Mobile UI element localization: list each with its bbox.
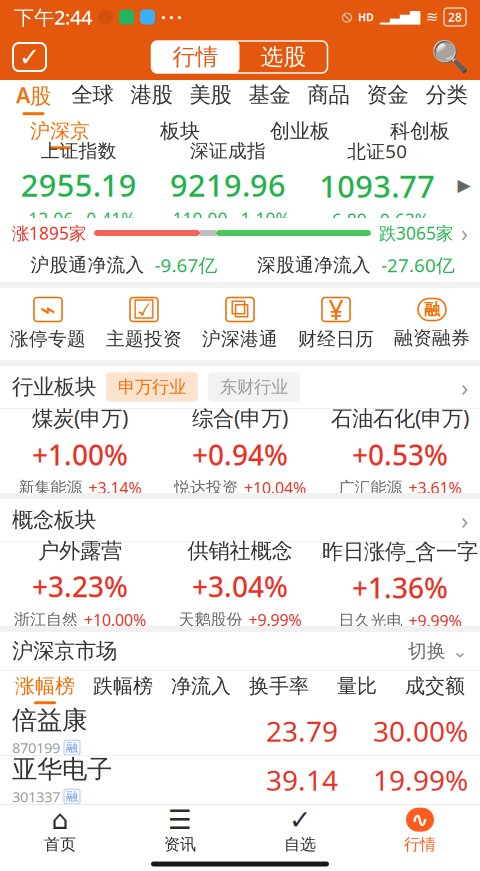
staticText: 美股 bbox=[189, 82, 231, 108]
button[interactable]: ⌁ bbox=[0, 297, 96, 350]
button[interactable]: 融 bbox=[384, 298, 480, 349]
button[interactable]: 涨幅榜 bbox=[6, 671, 84, 707]
button[interactable]: ✓ bbox=[240, 808, 360, 854]
staticText: 资讯 bbox=[164, 835, 196, 854]
staticText: 上证指数 bbox=[41, 140, 117, 163]
button[interactable]: ⌂ bbox=[0, 808, 120, 854]
button[interactable]: 成交额 bbox=[396, 671, 474, 707]
staticText: 亚华电子 bbox=[12, 754, 112, 785]
staticText: ✓ bbox=[19, 43, 40, 71]
staticText: 昨日涨停_含一字 bbox=[322, 537, 478, 565]
staticText: 沪股通净流入 bbox=[30, 253, 144, 276]
staticText: 行情 bbox=[404, 835, 436, 854]
button[interactable]: 基金 bbox=[240, 80, 299, 116]
button[interactable]: 切换 bbox=[408, 639, 468, 662]
staticText: ✓ bbox=[289, 804, 311, 835]
staticText: -0.63% bbox=[374, 208, 429, 231]
staticText: 39.14 bbox=[266, 761, 338, 799]
staticText: 23.79 bbox=[266, 712, 338, 750]
staticText: 沪深京 bbox=[30, 119, 90, 143]
button[interactable]: A股 bbox=[4, 80, 63, 116]
staticText: 301337 bbox=[12, 787, 60, 806]
staticText: 深股通净流入 bbox=[257, 253, 371, 276]
button[interactable]: ⧉ bbox=[192, 297, 288, 350]
button[interactable]: 净流入 bbox=[162, 671, 240, 707]
button[interactable]: 商品 bbox=[299, 80, 358, 116]
staticText: -1.19% bbox=[234, 207, 289, 230]
staticText: 🔍 bbox=[431, 39, 469, 74]
staticText: ¥ bbox=[328, 292, 343, 327]
button[interactable]: 换手率 bbox=[240, 671, 318, 707]
button[interactable]: 沪深京 bbox=[0, 116, 120, 152]
staticText: ⌄ bbox=[452, 640, 468, 662]
button[interactable]: 东财行业 bbox=[208, 372, 300, 402]
staticText: 换手率 bbox=[249, 674, 309, 698]
staticText: 行业板块 bbox=[12, 374, 96, 400]
button[interactable]: 昨日涨停_含一字 bbox=[320, 537, 480, 631]
staticText: +9.99% bbox=[408, 610, 461, 631]
staticText: 创业板 bbox=[270, 119, 330, 143]
button[interactable]: ☰ bbox=[120, 808, 240, 854]
button[interactable]: 资金 bbox=[358, 80, 417, 116]
staticText: 东财行业 bbox=[220, 376, 288, 398]
button[interactable]: 煤炭(申万) bbox=[0, 404, 160, 498]
staticText: 融 bbox=[66, 789, 78, 804]
button[interactable]: ☑ bbox=[96, 297, 192, 350]
button[interactable]: 深股通净流入 bbox=[240, 253, 472, 277]
staticText: 融 bbox=[424, 300, 440, 319]
button[interactable]: 板块 bbox=[120, 116, 240, 152]
staticText: 港股 bbox=[130, 82, 172, 108]
button[interactable]: 倍益康 bbox=[0, 707, 480, 755]
button[interactable]: 上证指数 bbox=[4, 140, 153, 230]
staticText: 基金 bbox=[248, 82, 290, 108]
staticText: +10.00% bbox=[84, 609, 146, 630]
button[interactable]: 行情 bbox=[151, 41, 239, 73]
button[interactable]: 申万行业 bbox=[106, 372, 198, 402]
staticText: 概念板块 bbox=[12, 507, 96, 533]
staticText: • • • bbox=[161, 8, 182, 26]
staticText: +0.53% bbox=[352, 436, 448, 473]
button[interactable]: 深证成指 bbox=[153, 140, 303, 230]
staticText: 广汇能源 bbox=[338, 478, 402, 498]
button[interactable]: 供销社概念 bbox=[160, 538, 320, 630]
staticText: 户外露营 bbox=[38, 538, 122, 564]
staticText: +0.94% bbox=[192, 436, 288, 473]
button[interactable]: 分类 bbox=[417, 80, 476, 116]
button[interactable]: 自选 bbox=[13, 43, 46, 71]
button[interactable]: 搜索 bbox=[433, 40, 467, 74]
button[interactable]: 跌幅榜 bbox=[84, 671, 162, 707]
staticText: 综合(申万) bbox=[192, 404, 288, 432]
button[interactable]: 石油石化(申万) bbox=[320, 404, 480, 498]
staticText: ⌁ bbox=[40, 294, 56, 325]
button[interactable]: 创业板 bbox=[240, 116, 360, 152]
staticText: 分类 bbox=[425, 82, 467, 108]
button[interactable]: 科创板 bbox=[360, 116, 480, 152]
staticText: ≋ bbox=[426, 9, 438, 25]
staticText: +1.36% bbox=[352, 569, 448, 606]
button[interactable]: ¥ bbox=[288, 297, 384, 350]
staticText: -27.60亿 bbox=[381, 253, 455, 277]
staticText: ☰ bbox=[168, 804, 192, 835]
staticText: 涨幅榜 bbox=[15, 674, 75, 698]
button[interactable]: 沪股通净流入 bbox=[8, 253, 240, 277]
staticText: 1093.77 bbox=[319, 165, 435, 206]
button[interactable]: 选股 bbox=[239, 41, 327, 73]
staticText: 首页 bbox=[44, 835, 76, 854]
button[interactable]: 全球 bbox=[63, 80, 122, 116]
button[interactable]: ∿ bbox=[360, 808, 480, 854]
button[interactable]: 综合(申万) bbox=[160, 404, 320, 498]
button[interactable]: 户外露营 bbox=[0, 538, 160, 630]
button[interactable]: 北证50 bbox=[303, 139, 452, 231]
button[interactable]: 港股 bbox=[122, 80, 181, 116]
button[interactable]: 美股 bbox=[181, 80, 240, 116]
button[interactable]: 涨1895家 bbox=[0, 218, 480, 248]
staticText: 成交额 bbox=[405, 674, 465, 698]
staticText: -0.41% bbox=[80, 207, 135, 230]
button[interactable]: 更多指数 bbox=[452, 155, 476, 215]
staticText: ▶ bbox=[457, 175, 470, 195]
button[interactable]: 量比 bbox=[318, 671, 396, 707]
button[interactable]: 亚华电子 bbox=[0, 756, 480, 804]
staticText: 下午2:44 bbox=[14, 4, 92, 30]
staticText: +9.99% bbox=[248, 609, 301, 630]
button[interactable]: 概念板块 bbox=[0, 499, 480, 541]
